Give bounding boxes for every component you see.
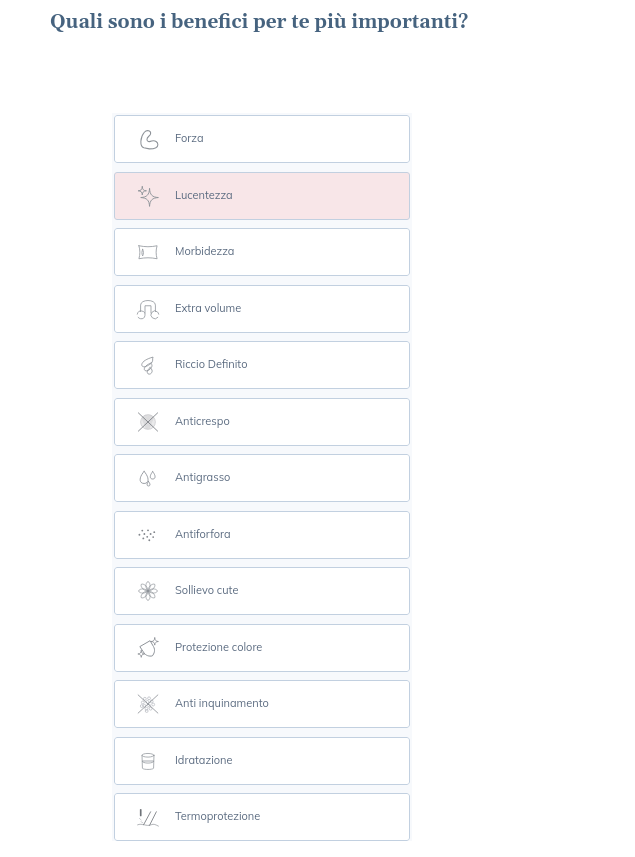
staticText: Anticrespo xyxy=(175,414,230,428)
button[interactable]: Extra volume xyxy=(114,285,410,333)
staticText: Quali sono i benefici per te più importa… xyxy=(50,10,469,34)
button[interactable]: Termoprotezione xyxy=(114,793,410,841)
button[interactable]: Idratazione xyxy=(114,737,410,785)
staticText: Protezione colore xyxy=(175,640,263,654)
staticText: Antiforfora xyxy=(175,527,231,541)
button[interactable]: Antigrasso xyxy=(114,454,410,502)
button[interactable]: Forza xyxy=(114,115,410,163)
button[interactable]: Anti inquinamento xyxy=(114,680,410,728)
button[interactable]: Riccio Definito xyxy=(114,341,410,389)
button[interactable]: Morbidezza xyxy=(114,228,410,276)
button[interactable]: Anticrespo xyxy=(114,398,410,446)
staticText: Idratazione xyxy=(175,753,233,767)
staticText: Morbidezza xyxy=(175,244,235,258)
button[interactable]: Antiforfora xyxy=(114,511,410,559)
staticText: Antigrasso xyxy=(175,470,231,484)
staticText: Forza xyxy=(175,131,204,145)
staticText: Termoprotezione xyxy=(175,809,261,823)
button[interactable]: Protezione colore xyxy=(114,624,410,672)
staticText: Riccio Definito xyxy=(175,357,248,371)
button[interactable]: Lucentezza xyxy=(114,172,410,220)
staticText: Lucentezza xyxy=(175,188,233,202)
staticText: Extra volume xyxy=(175,301,242,315)
button[interactable]: Sollievo cute xyxy=(114,567,410,615)
staticText: Sollievo cute xyxy=(175,583,239,597)
staticText: Anti inquinamento xyxy=(175,696,269,710)
